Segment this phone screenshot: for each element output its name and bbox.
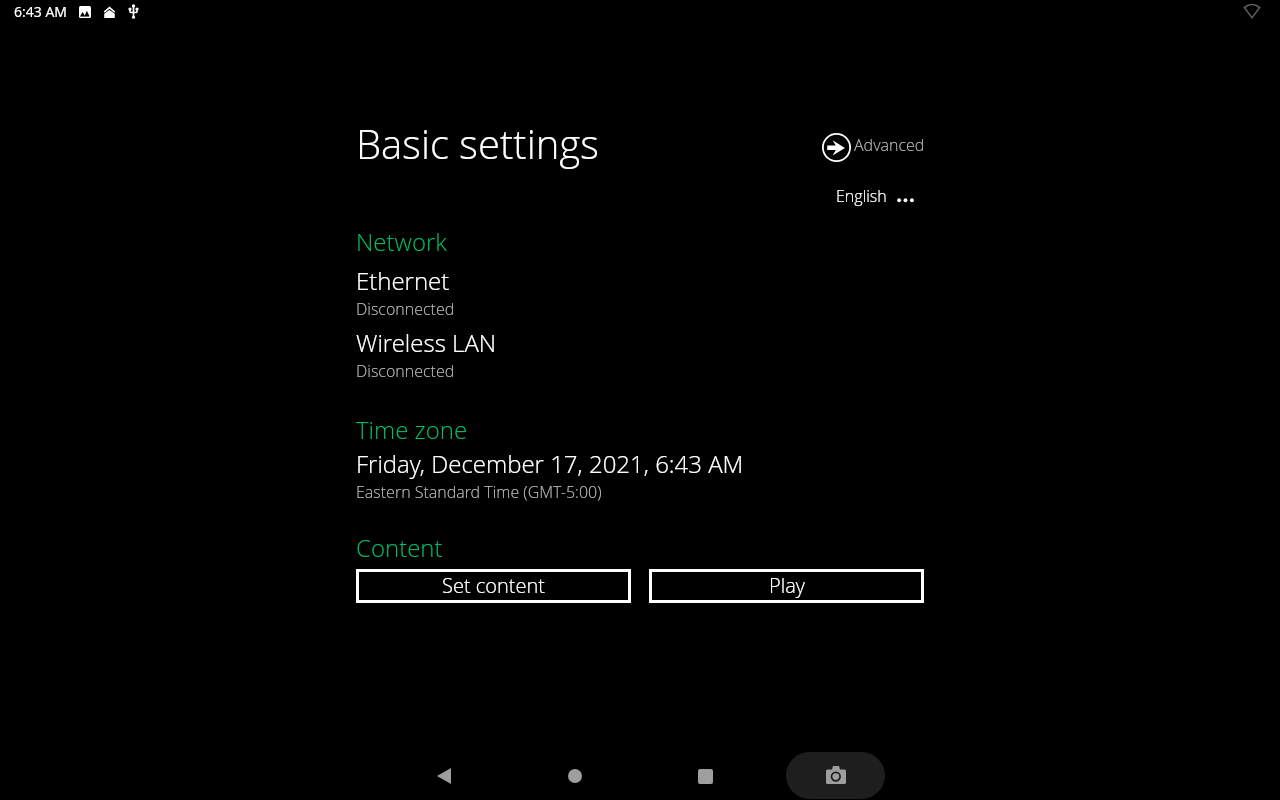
staticText: Disconnected — [356, 298, 455, 320]
staticText: Play — [769, 572, 805, 599]
staticText: Content — [356, 531, 443, 564]
button[interactable]: English — [834, 183, 916, 209]
button[interactable]: Friday, December 17, 2021, 6:43 AM — [356, 447, 916, 503]
button[interactable]: Recent apps — [685, 756, 725, 796]
button[interactable]: Set content — [356, 569, 631, 603]
staticText: Network — [356, 225, 447, 258]
staticText: Wireless LAN — [356, 326, 497, 359]
staticText: Basic settings — [356, 116, 599, 170]
staticText: English — [836, 185, 887, 207]
button[interactable]: Advanced — [820, 131, 927, 164]
button[interactable]: Home — [555, 756, 595, 796]
staticText: Time zone — [356, 413, 468, 446]
staticText: 6:43 AM — [14, 2, 67, 21]
staticText: Disconnected — [356, 360, 455, 382]
button[interactable]: Back — [424, 756, 464, 796]
staticText: Eastern Standard Time (GMT-5:00) — [356, 481, 602, 503]
staticText: Ethernet — [356, 264, 450, 297]
button[interactable]: Play — [649, 569, 924, 603]
staticText: Set content — [442, 572, 545, 599]
button[interactable]: Ethernet — [356, 264, 916, 320]
button[interactable]: Wireless LAN — [356, 326, 916, 382]
staticText: Advanced — [854, 134, 925, 156]
staticText: Friday, December 17, 2021, 6:43 AM — [356, 447, 744, 480]
button[interactable]: Camera — [786, 752, 885, 799]
